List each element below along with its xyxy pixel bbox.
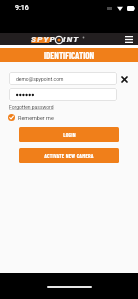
- staticText: ACTIVATE NEW CAMERA: [44, 152, 94, 159]
- button[interactable]: Remember me: [8, 114, 54, 121]
- button[interactable]: Forgotten password: [9, 104, 54, 110]
- button[interactable]: ACTIVATE NEW CAMERA: [19, 148, 119, 163]
- button[interactable]: [9, 88, 117, 101]
- staticText: SPYP: [31, 35, 57, 44]
- button[interactable]: demo@spypoint.com: [9, 72, 117, 85]
- staticText: INT: [63, 35, 80, 44]
- button[interactable]: Clear email: [118, 73, 130, 85]
- staticText: LOGIN: [63, 131, 76, 138]
- staticText: Forgotten password: [9, 104, 54, 110]
- staticText: Remember me: [18, 115, 54, 121]
- button[interactable]: LOGIN: [19, 127, 119, 142]
- staticText: 9:16: [15, 4, 29, 12]
- button[interactable]: Menu: [123, 33, 135, 45]
- staticText: demo@spypoint.com: [16, 76, 64, 82]
- staticText: IDENTIFICATION: [44, 50, 95, 61]
